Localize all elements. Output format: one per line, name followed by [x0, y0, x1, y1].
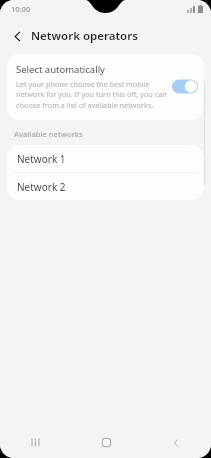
button[interactable]: Recent apps — [0, 427, 71, 458]
button[interactable]: Home — [71, 427, 141, 458]
button[interactable]: Network 1 — [7, 145, 204, 172]
staticText: Available networks — [14, 129, 83, 139]
staticText: Select automatically — [16, 63, 105, 76]
button[interactable]: Select automatically — [7, 54, 204, 120]
staticText: Network 2 — [17, 180, 66, 194]
staticText: Network operators — [31, 28, 138, 44]
staticText: 10:00 — [11, 4, 31, 14]
staticText: Let your phone choose the best mobile ne… — [16, 79, 168, 110]
button[interactable]: Navigate up — [6, 25, 28, 47]
button[interactable]: Back — [141, 427, 211, 458]
button[interactable]: Select automatically toggle — [172, 79, 198, 94]
button[interactable]: Network 2 — [7, 173, 204, 200]
staticText: Network 1 — [17, 152, 66, 166]
